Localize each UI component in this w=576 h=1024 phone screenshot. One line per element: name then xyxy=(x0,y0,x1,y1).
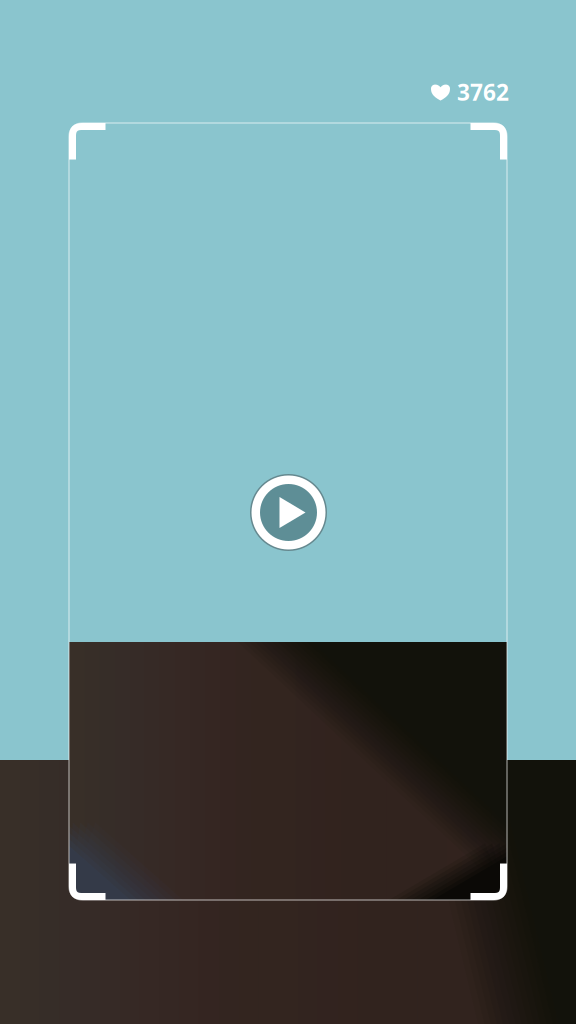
staticText: 3762 xyxy=(457,77,509,107)
button[interactable]: 3762 likes xyxy=(431,77,509,107)
button[interactable]: Play xyxy=(250,474,327,551)
